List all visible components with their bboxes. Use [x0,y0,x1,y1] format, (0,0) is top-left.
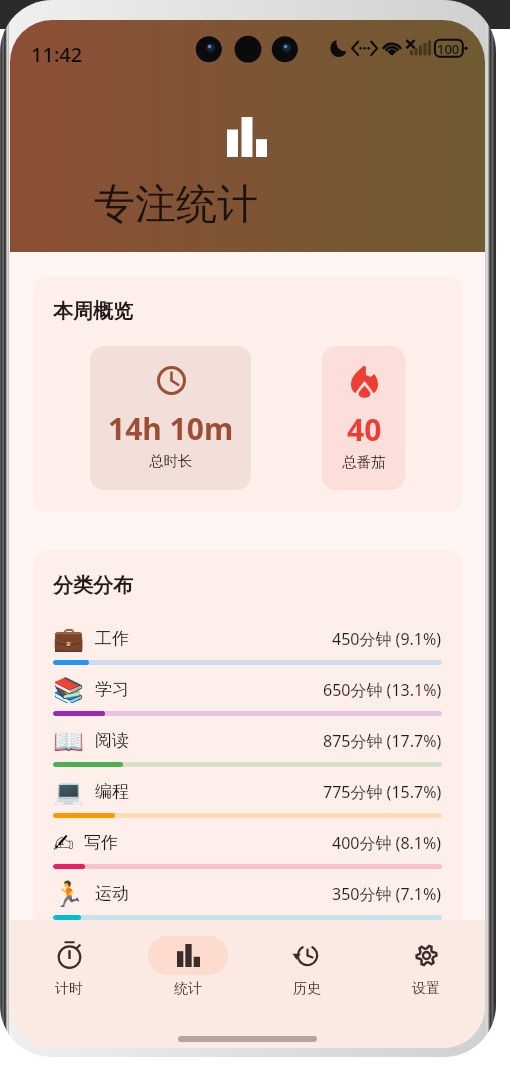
staticText: 学习 [95,679,129,700]
staticText: 工作 [95,628,129,649]
staticText: 专注统计 [94,179,258,231]
staticText: 分类分布 [53,573,133,598]
staticText: 💻 [53,778,85,805]
button[interactable]: 📖 [53,727,442,778]
staticText: 100 [437,40,460,58]
staticText: 📖 [53,727,85,754]
staticText: 775分钟 (15.7%) [323,781,442,803]
staticText: 11:42 [31,41,83,68]
staticText: 历史 [293,980,321,995]
staticText: 📚 [53,676,85,703]
staticText: 设置 [412,980,440,995]
staticText: 总时长 [149,452,193,470]
staticText: 本周概览 [53,299,133,324]
staticText: 14h 10m [108,408,234,449]
staticText: 计时 [55,980,83,995]
staticText: 运动 [95,883,129,904]
button[interactable]: History [247,920,366,995]
staticText: ✍️ [53,829,74,856]
staticText: 阅读 [95,730,129,751]
button[interactable]: 40 [322,346,405,490]
button[interactable]: Timer [10,920,128,995]
button[interactable]: Statistics [128,920,247,995]
button[interactable]: Settings [366,920,485,995]
button[interactable]: 14h 10m [90,346,251,490]
button[interactable]: 🏃 [53,880,442,931]
staticText: 650分钟 (13.1%) [323,679,442,701]
staticText: 450分钟 (9.1%) [332,628,442,650]
staticText: 🏃 [53,880,85,907]
staticText: 875分钟 (17.7%) [323,730,442,752]
staticText: 统计 [174,980,202,995]
staticText: 总番茄 [342,453,386,471]
staticText: 350分钟 (7.1%) [332,883,442,905]
staticText: 编程 [95,781,129,802]
button[interactable]: 💼 [53,625,442,676]
staticText: 400分钟 (8.1%) [332,832,442,854]
staticText: 💼 [53,625,85,652]
button[interactable]: 📚 [53,676,442,727]
button[interactable]: 💻 [53,778,442,829]
staticText: 写作 [84,832,118,853]
button[interactable]: ✍️ [53,829,442,880]
staticText: 40 [347,409,382,450]
